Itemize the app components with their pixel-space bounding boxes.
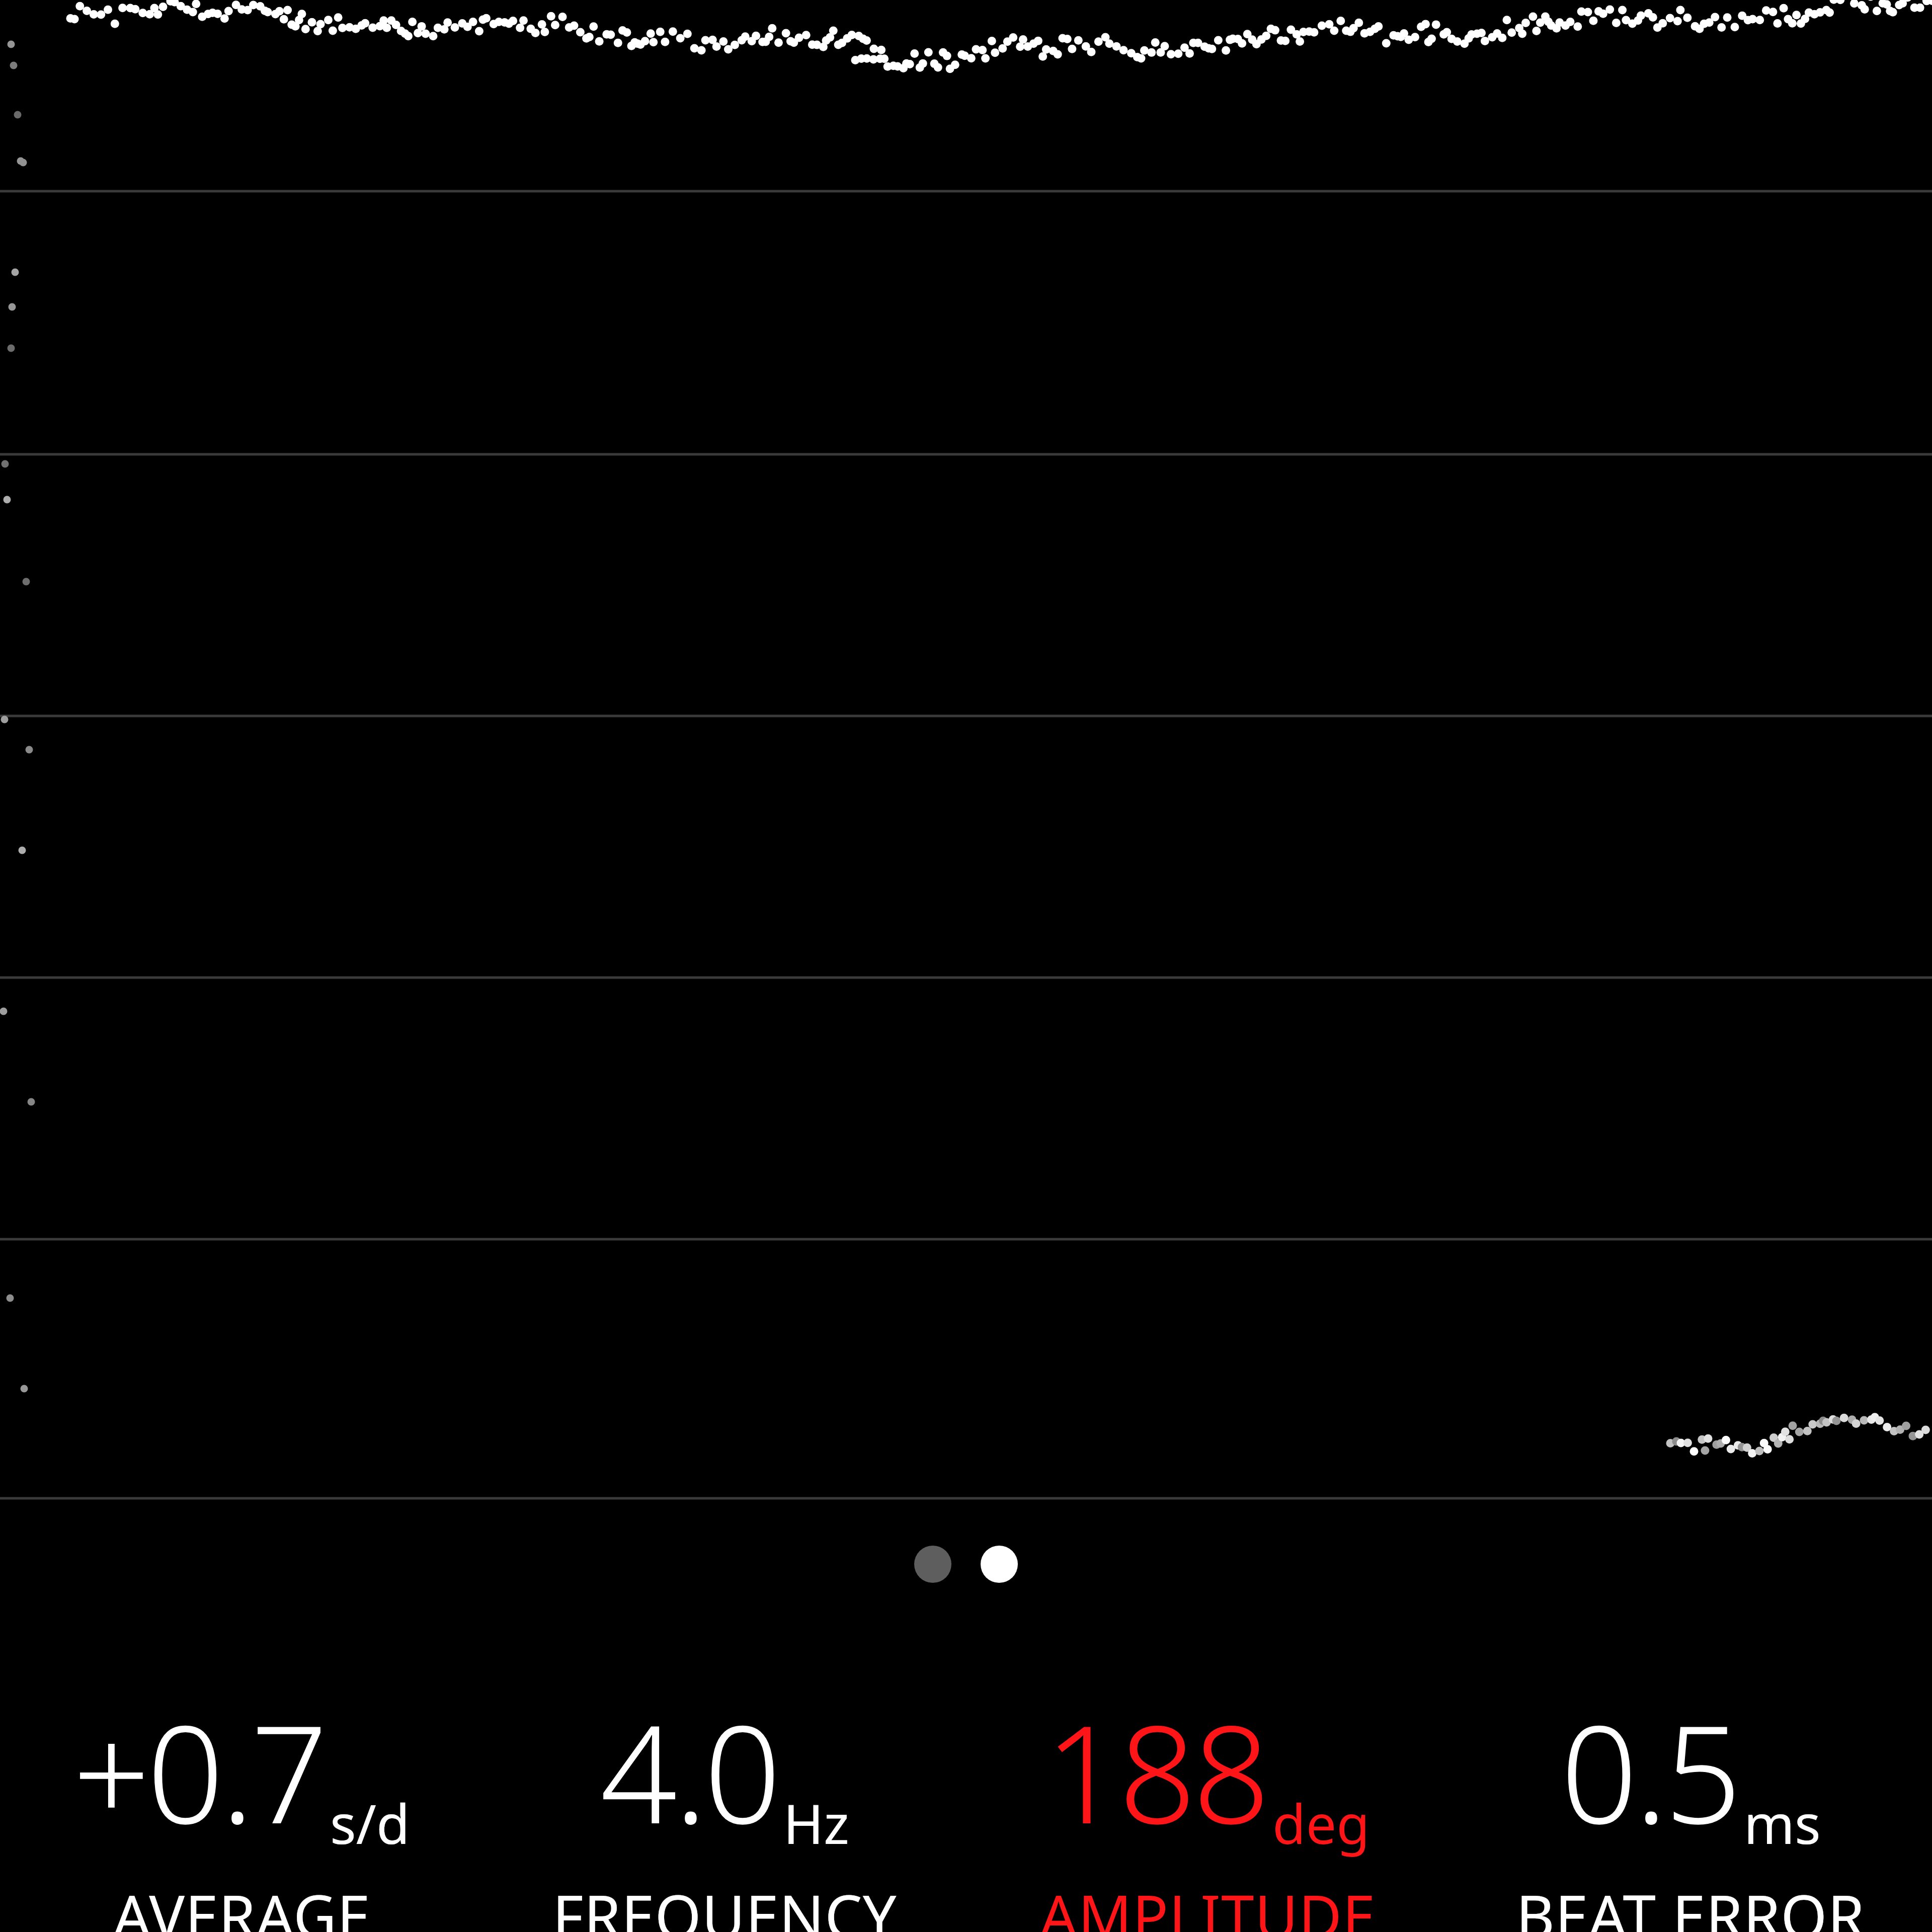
staticText: FREQUENCY [552,1875,897,1932]
staticText: AMPLITUDE [1039,1875,1376,1932]
staticText: Hz [783,1786,849,1860]
staticText: ms [1744,1786,1821,1860]
button[interactable]: Page indicator, page 2 of 2 [901,1539,1031,1590]
staticText: deg [1272,1786,1370,1860]
staticText: +0.7 [73,1679,325,1863]
button[interactable]: Rate trace graph [0,0,1932,1499]
staticText: s/d [330,1786,410,1860]
button[interactable]: 4.0 [483,1675,966,1932]
staticText: 188 [1045,1679,1267,1863]
staticText: 4.0 [600,1679,778,1863]
staticText: 0.5 [1561,1679,1739,1863]
staticText: AVERAGE [113,1875,371,1932]
button[interactable]: 0.5 [1449,1675,1932,1932]
button[interactable]: +0.7 [0,1675,483,1932]
staticText: BEAT ERROR [1516,1875,1865,1932]
button[interactable]: 188 [966,1675,1449,1932]
